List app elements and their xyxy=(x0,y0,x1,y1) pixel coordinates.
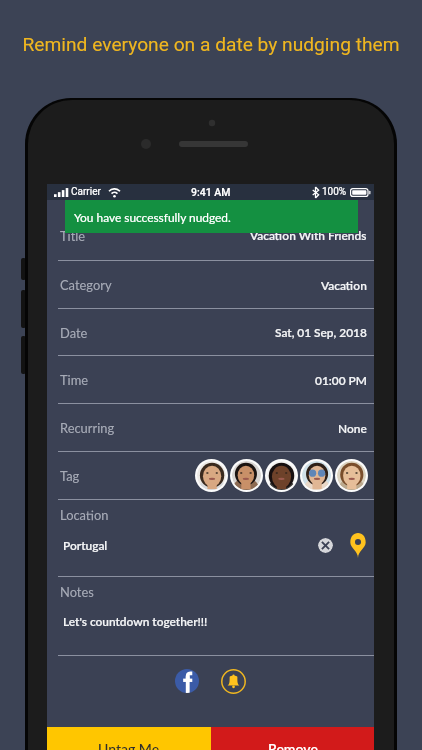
staticText: Time xyxy=(60,372,89,387)
staticText: Category xyxy=(60,277,112,292)
staticText: Tag xyxy=(60,468,80,483)
button[interactable]: Share on Facebook xyxy=(175,669,199,693)
staticText: Let's countdown together!!! xyxy=(63,614,208,628)
staticText: 100% xyxy=(322,186,347,198)
button[interactable]: Untag Me xyxy=(47,727,211,750)
staticText: Recurring xyxy=(60,420,115,435)
staticText: None xyxy=(338,421,367,435)
staticText: Title xyxy=(60,228,86,243)
button[interactable]: Tag xyxy=(60,452,368,499)
staticText: You have successfully nudged. xyxy=(74,210,231,224)
staticText: Remove xyxy=(268,740,318,750)
staticText: 9:41 AM xyxy=(191,186,231,198)
staticText: Carrier xyxy=(71,186,101,198)
button[interactable]: Clear location xyxy=(318,538,333,553)
staticText: Location xyxy=(60,507,109,522)
staticText: Remind everyone on a date by nudging the… xyxy=(0,33,422,56)
button[interactable]: Category xyxy=(60,261,367,308)
button[interactable]: Date xyxy=(60,309,367,355)
staticText: Vacation xyxy=(321,278,367,292)
staticText: Notes xyxy=(60,584,94,599)
staticText: 01:00 PM xyxy=(315,373,367,387)
staticText: Portugal xyxy=(63,538,108,552)
button[interactable]: Recurring xyxy=(60,404,367,451)
staticText: Vacation With Friends xyxy=(250,228,367,242)
button[interactable]: Remove xyxy=(211,727,374,750)
button[interactable]: Title xyxy=(60,210,367,260)
button[interactable]: Show on map xyxy=(350,533,366,558)
staticText: Untag Me xyxy=(98,740,160,750)
staticText: Date xyxy=(60,325,88,340)
button[interactable]: Time xyxy=(60,356,367,403)
button[interactable]: Set reminder xyxy=(221,669,246,694)
staticText: Sat, 01 Sep, 2018 xyxy=(275,325,367,339)
